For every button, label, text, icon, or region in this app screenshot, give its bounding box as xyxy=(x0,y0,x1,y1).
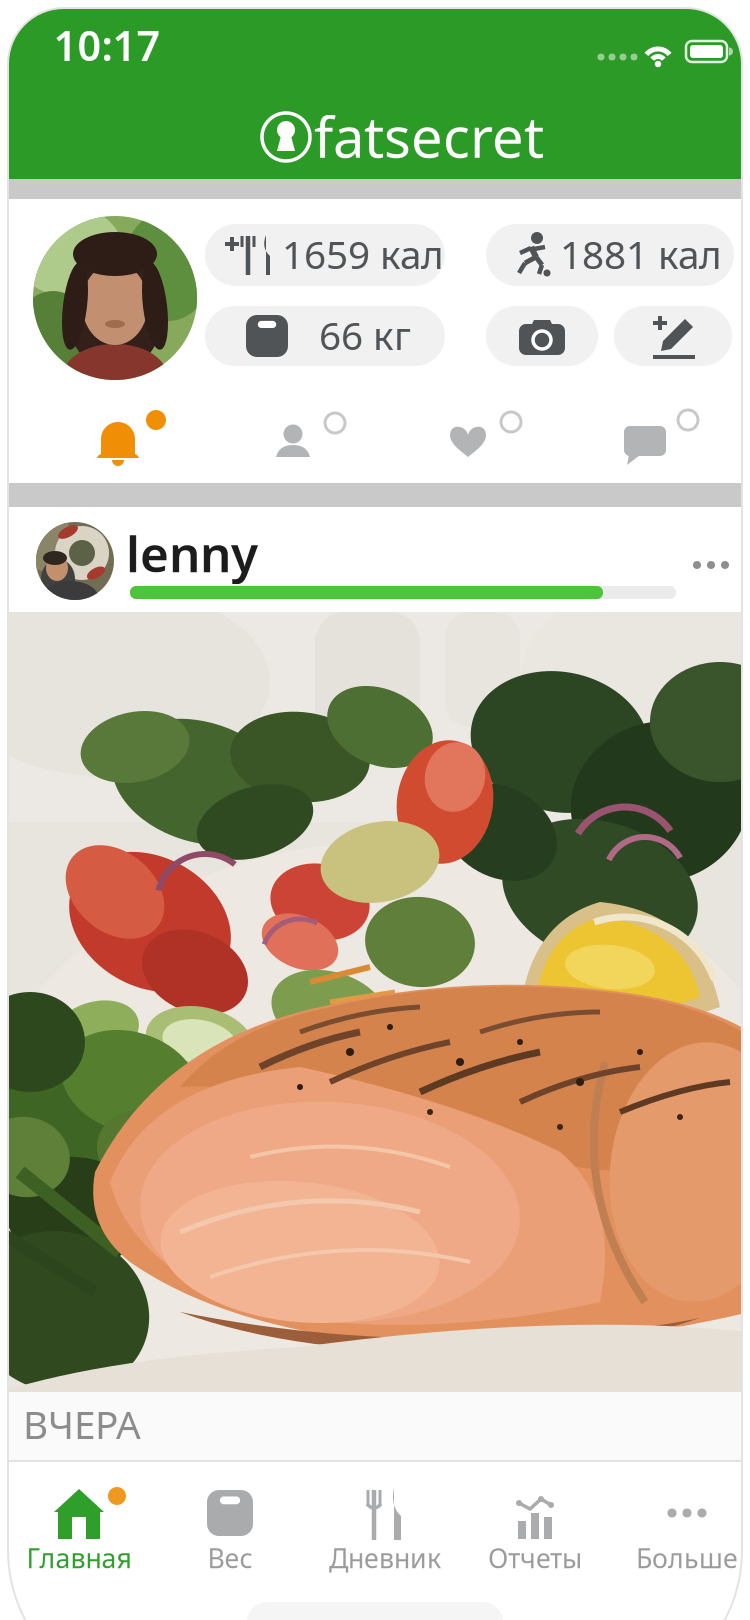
button[interactable] xyxy=(418,399,518,481)
button[interactable]: Дневник xyxy=(315,1475,455,1585)
staticText: ВЧЕРА xyxy=(23,1398,141,1450)
button[interactable]: 1881 кал xyxy=(486,224,734,286)
staticText: 1881 кал xyxy=(560,228,722,280)
button[interactable]: Главная xyxy=(9,1475,149,1585)
staticText: Дневник xyxy=(329,1540,441,1576)
button[interactable]: 66 кг xyxy=(205,306,445,366)
staticText: 66 кг xyxy=(319,309,411,361)
staticText: Больше xyxy=(636,1540,738,1576)
button[interactable]: 1659 кал xyxy=(205,224,445,286)
button[interactable] xyxy=(68,399,168,481)
button[interactable]: fatsecret xyxy=(259,95,549,179)
staticText: fatsecret xyxy=(314,99,544,173)
button[interactable] xyxy=(595,399,695,481)
button[interactable]: lenny xyxy=(0,0,750,1620)
button[interactable] xyxy=(243,399,343,481)
staticText: 10:17 xyxy=(53,18,160,72)
staticText: lenny xyxy=(126,520,258,586)
staticText: Отчеты xyxy=(488,1540,582,1576)
staticText: Главная xyxy=(26,1540,131,1576)
button[interactable]: Вес xyxy=(160,1475,300,1585)
button[interactable] xyxy=(33,216,197,380)
button[interactable] xyxy=(614,306,732,366)
staticText: 1659 кал xyxy=(282,228,444,280)
button[interactable]: Больше xyxy=(617,1475,750,1585)
button[interactable] xyxy=(486,306,598,366)
staticText: Вес xyxy=(207,1540,252,1576)
button[interactable]: Отчеты xyxy=(465,1475,605,1585)
